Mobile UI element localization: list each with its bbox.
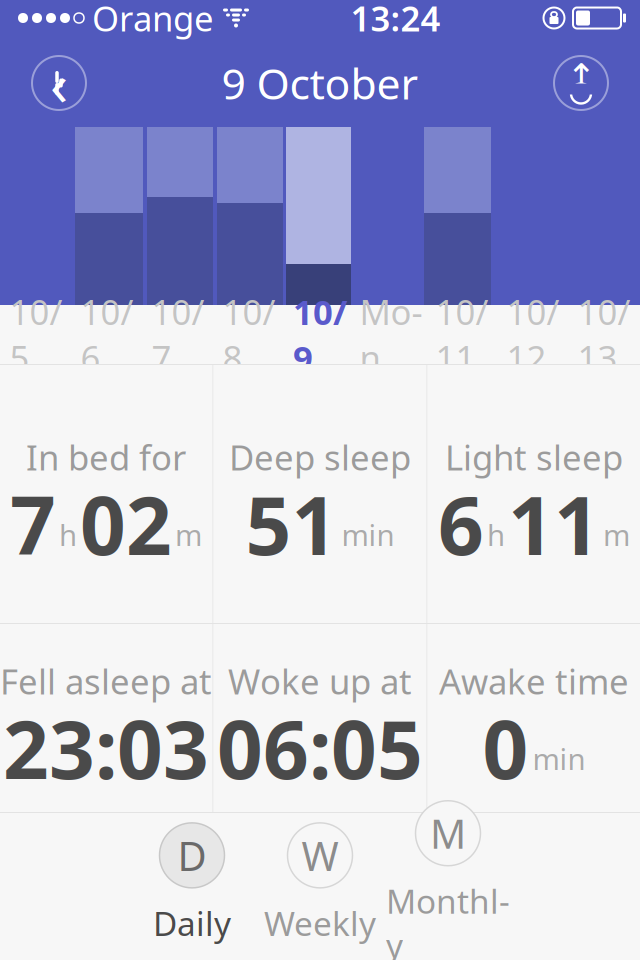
staticText: 10/6 xyxy=(80,288,133,381)
button[interactable]: 10/8 xyxy=(213,305,284,364)
staticText: Woke up at xyxy=(228,658,412,704)
staticText: 10/8 xyxy=(222,288,275,381)
staticText: Mon xyxy=(359,288,422,381)
staticText: Daily xyxy=(153,901,231,945)
staticText: W xyxy=(301,829,338,882)
staticText: M xyxy=(430,807,466,860)
staticText: Awake time xyxy=(439,658,629,704)
staticText: Monthly xyxy=(386,879,510,960)
staticText: In bed for xyxy=(26,434,186,480)
button[interactable]: 10/9 xyxy=(284,305,355,364)
button[interactable]: 10/5 xyxy=(0,305,71,364)
staticText: 23:03 xyxy=(3,695,209,801)
staticText: min xyxy=(341,515,394,554)
staticText: 11 xyxy=(508,471,600,577)
button[interactable]: 10/6 xyxy=(71,305,142,364)
staticText: 6 xyxy=(438,471,484,577)
button[interactable]: 10/11 xyxy=(426,305,497,364)
staticText: 10/12 xyxy=(506,288,559,381)
button[interactable]: Share xyxy=(554,56,608,110)
staticText: Weekly xyxy=(264,901,376,945)
staticText: 10/11 xyxy=(435,288,488,381)
staticText: 02 xyxy=(80,471,172,577)
button[interactable]: D xyxy=(128,818,256,950)
button[interactable]: Back xyxy=(32,56,86,110)
button[interactable]: 10/13 xyxy=(568,305,639,364)
button[interactable]: 10/7 xyxy=(142,305,213,364)
staticText: Light sleep xyxy=(445,434,623,480)
button[interactable]: W xyxy=(256,818,384,950)
staticText: m xyxy=(603,515,630,554)
staticText: 06:05 xyxy=(217,695,423,801)
button[interactable]: Mon xyxy=(355,305,426,364)
button[interactable]: M xyxy=(384,818,512,950)
staticText: min xyxy=(532,739,585,778)
staticText: Orange xyxy=(92,0,214,41)
staticText: h xyxy=(59,515,77,554)
staticText: 10/9 xyxy=(293,288,347,381)
staticText: 13:24 xyxy=(350,0,440,41)
staticText: D xyxy=(177,829,206,882)
staticText: 51 xyxy=(245,471,337,577)
staticText: 7 xyxy=(10,471,56,577)
staticText: ↑ xyxy=(566,57,596,97)
staticText: 10/7 xyxy=(151,288,204,381)
staticText: 10/13 xyxy=(577,288,630,381)
staticText: m xyxy=(175,515,202,554)
staticText: 0 xyxy=(482,695,528,801)
staticText: 9 October xyxy=(221,55,418,111)
staticText: Fell asleep at xyxy=(0,658,212,704)
staticText: Deep sleep xyxy=(229,434,411,480)
staticText: 10/5 xyxy=(9,288,62,381)
button[interactable]: 10/12 xyxy=(497,305,568,364)
staticText: ‹ xyxy=(50,44,68,122)
staticText: h xyxy=(487,515,505,554)
